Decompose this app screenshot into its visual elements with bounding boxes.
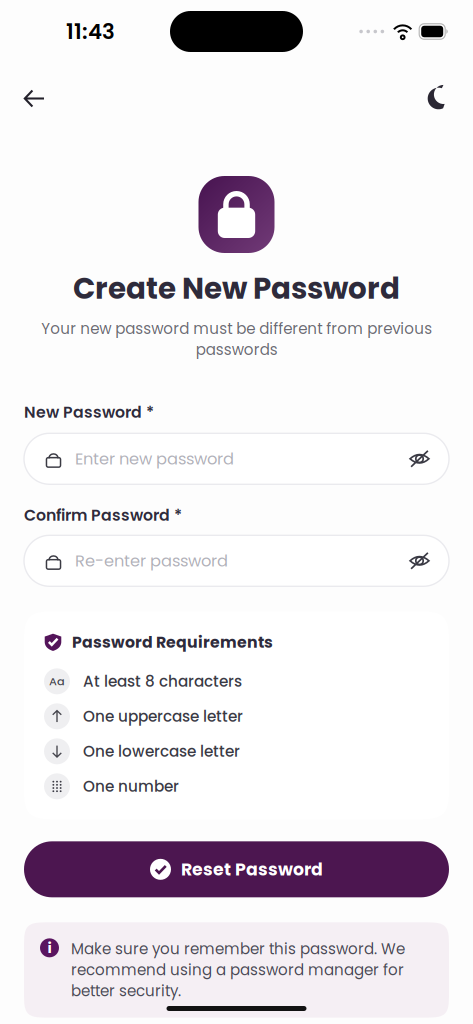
staticText: New Password *: [24, 401, 154, 423]
staticText: One lowercase letter: [83, 741, 240, 762]
staticText: Aa: [49, 673, 65, 689]
button[interactable]: Toggle dark mode: [417, 77, 460, 120]
button[interactable]: Back: [13, 77, 55, 119]
staticText: Password Requirements: [72, 631, 273, 653]
button[interactable]: Show password: [397, 535, 449, 586]
button[interactable]: Reset Password: [24, 841, 449, 897]
button[interactable]: Show password: [397, 433, 449, 484]
staticText: Create New Password: [73, 268, 400, 309]
staticText: One number: [83, 776, 179, 797]
staticText: Make sure you remember this password. We…: [71, 938, 405, 1002]
staticText: Your new password must be different from…: [41, 318, 432, 360]
staticText: 11:43: [66, 17, 115, 46]
staticText: Confirm Password *: [24, 504, 182, 526]
staticText: At least 8 characters: [83, 671, 242, 692]
staticText: i: [47, 937, 51, 958]
staticText: Enter new password: [75, 447, 234, 470]
staticText: Re-enter password: [75, 549, 228, 572]
staticText: One uppercase letter: [83, 706, 243, 727]
staticText: Reset Password: [181, 857, 323, 881]
